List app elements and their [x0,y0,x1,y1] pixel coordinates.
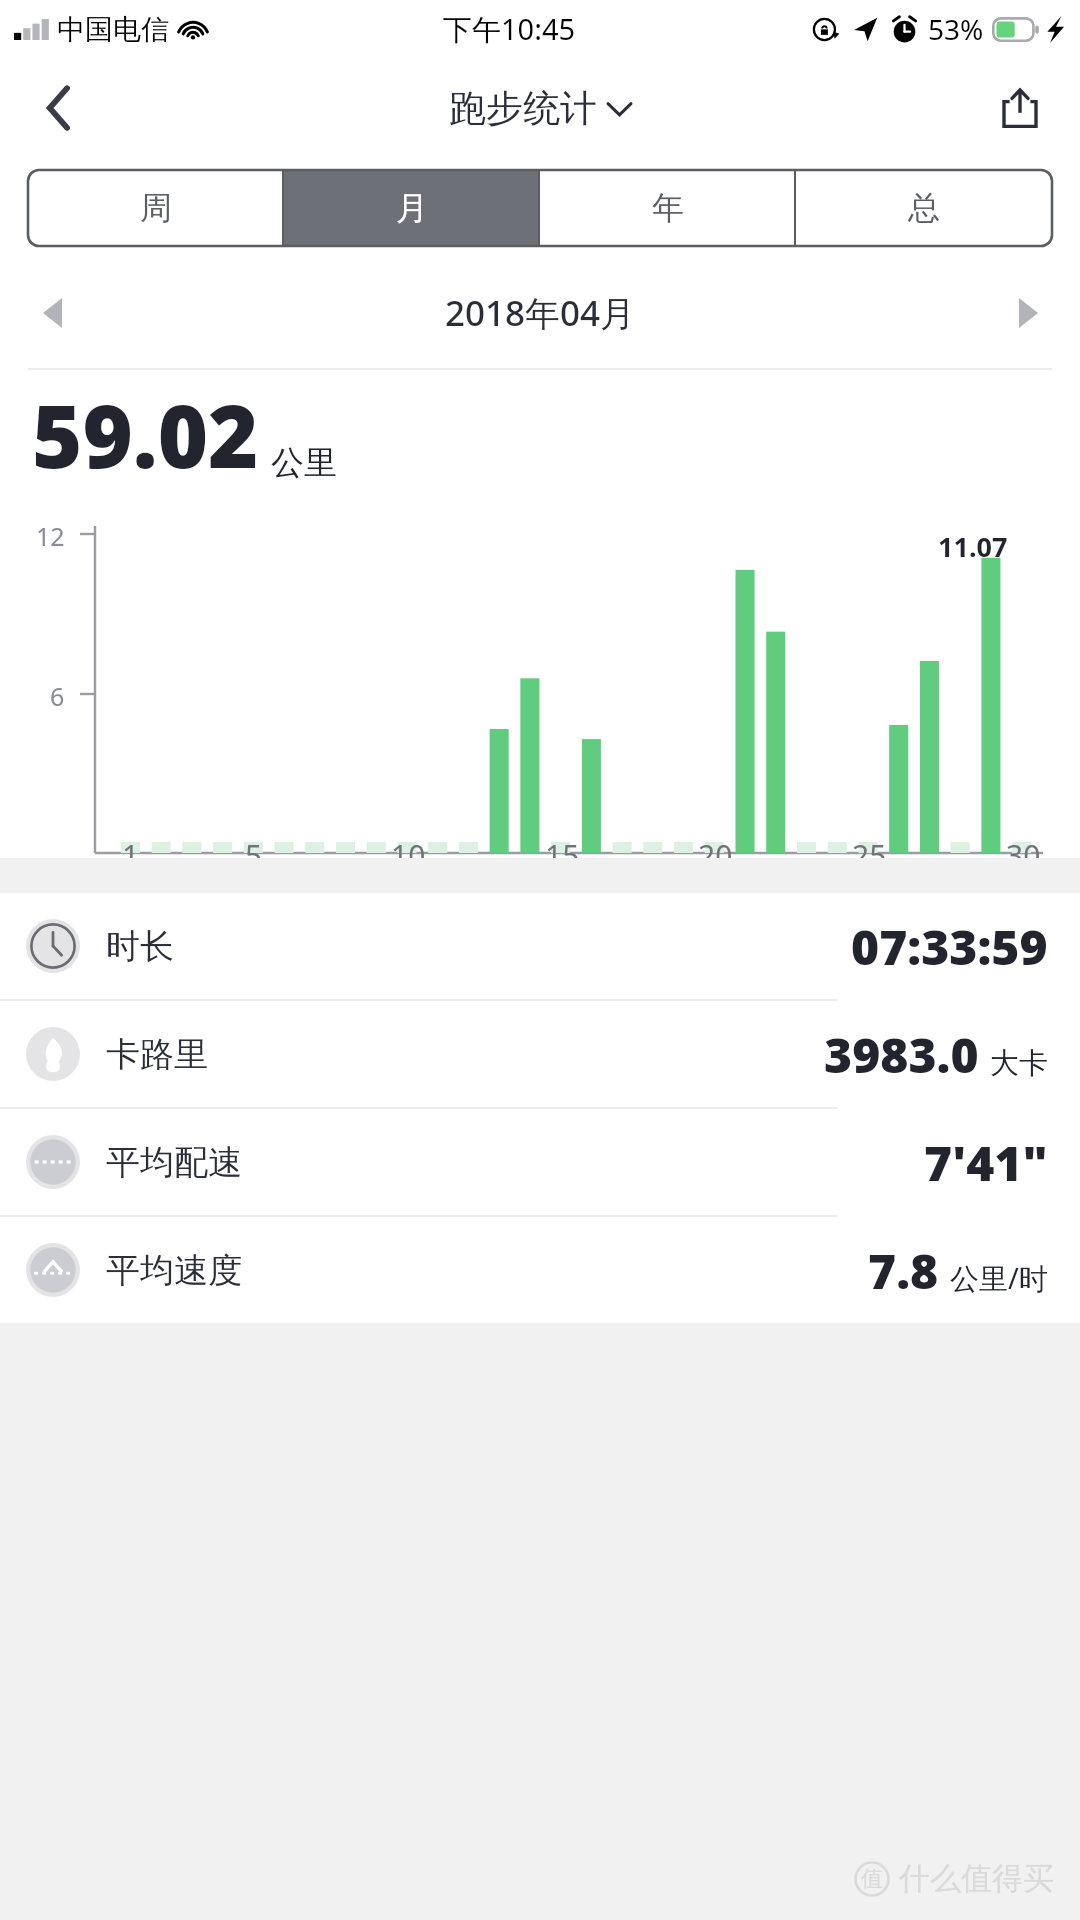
button[interactable]: 分享 [982,70,1058,146]
staticText: 1 [122,835,140,876]
staticText: 10 [391,835,426,876]
button[interactable]: 下个月 [996,281,1060,345]
staticText: 3983.0 [824,1022,979,1087]
staticText: 总 [908,188,940,228]
staticText: 15 [545,835,580,876]
button[interactable]: 上个月 [20,281,84,345]
staticText: 11.07 [938,528,1008,565]
button[interactable]: 平均配速 [0,1109,1080,1215]
staticText: 大卡 [990,1045,1048,1082]
staticText: 跑步统计 [449,85,597,132]
button[interactable]: 月 [284,170,540,246]
staticText: 6 [50,679,65,713]
staticText: 卡路里 [106,1033,208,1076]
staticText: 7.8 [868,1238,939,1303]
staticText: 月 [396,188,428,228]
staticText: 53% [928,10,984,48]
staticText: 5 [245,835,263,876]
staticText: 中国电信 [57,12,169,47]
staticText: 平均速度 [106,1249,242,1292]
button[interactable]: 跑步统计 [449,85,631,132]
staticText: 25 [852,835,887,876]
button[interactable]: 卡路里 [0,1001,1080,1107]
staticText: 值 [861,1865,883,1893]
staticText: 时长 [106,925,174,968]
staticText: 下午10:45 [443,9,576,49]
button[interactable]: 返回 [20,70,96,146]
staticText: 公里/时 [950,1258,1048,1298]
staticText: 平均配速 [106,1141,242,1184]
staticText: 12 [36,519,65,553]
button[interactable]: 年 [540,170,796,246]
staticText: 什么值得买 [899,1859,1054,1898]
button[interactable]: 时长 [0,893,1080,999]
staticText: 周 [140,188,172,228]
button[interactable]: 总 [796,170,1052,246]
button[interactable]: 平均速度 [0,1217,1080,1323]
staticText: 年 [652,188,684,228]
staticText: 公里 [271,442,337,484]
staticText: 07:33:59 [851,914,1048,979]
staticText: 2018年04月 [445,289,636,337]
staticText: 20 [698,835,733,876]
staticText: 7'41" [924,1130,1048,1195]
staticText: 30 [1006,835,1041,876]
button[interactable]: 周 [28,170,284,246]
staticText: 59.02 [32,376,259,493]
